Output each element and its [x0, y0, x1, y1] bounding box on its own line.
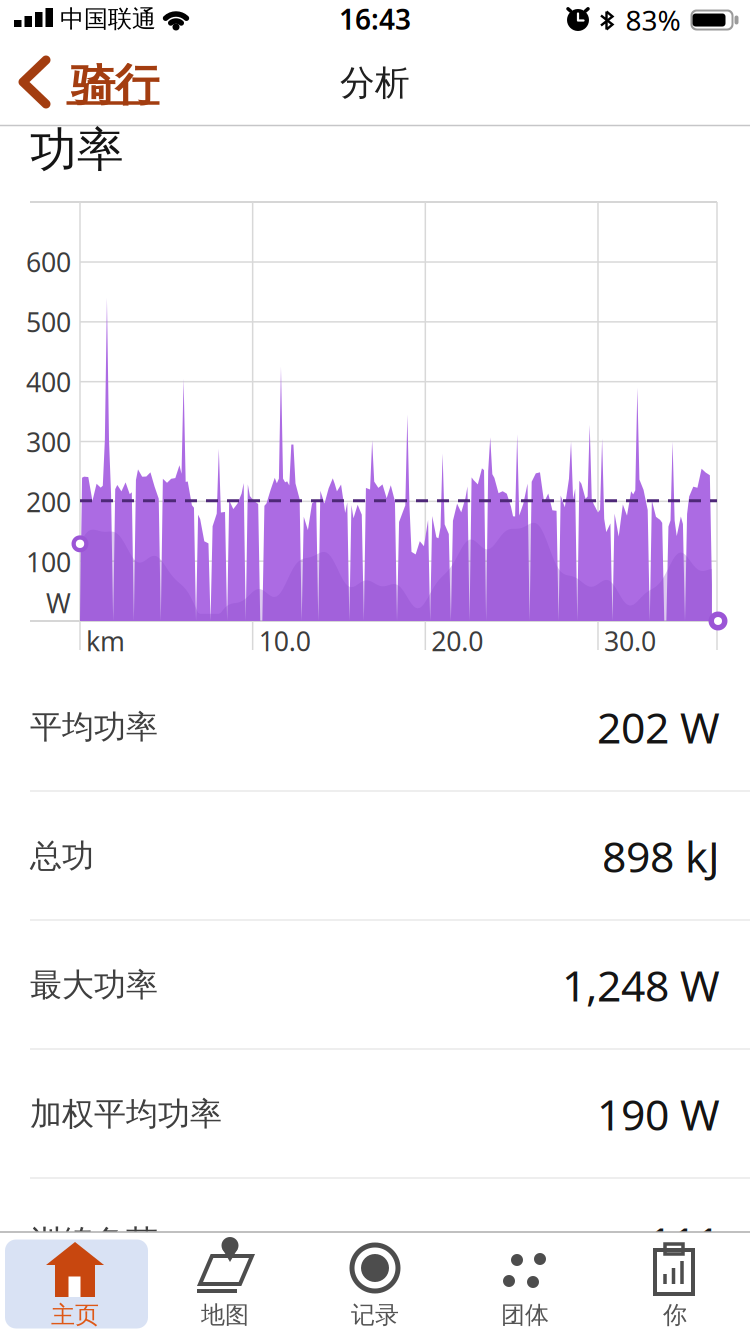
staticText: 10.0 — [259, 623, 311, 659]
staticText: 190 W — [597, 1086, 720, 1142]
staticText: km — [86, 623, 125, 659]
staticText: 分析 — [340, 62, 410, 104]
staticText: 898 kJ — [602, 828, 720, 884]
button[interactable]: 团体 — [450, 1232, 600, 1334]
staticText: 100 — [26, 544, 71, 580]
button[interactable]: 主页 — [0, 1232, 150, 1334]
staticText: 300 — [26, 424, 71, 460]
staticText: 主页 — [51, 1300, 99, 1330]
staticText: 600 — [26, 244, 71, 280]
button[interactable]: 记录 — [300, 1232, 450, 1334]
button[interactable]: 地图 — [150, 1232, 300, 1334]
staticText: 中国联通 — [60, 4, 156, 34]
staticText: 记录 — [351, 1300, 399, 1330]
staticText: 功率 — [30, 121, 124, 179]
staticText: 平均功率 — [30, 707, 158, 747]
staticText: 骑行 — [71, 58, 159, 112]
staticText: 你 — [663, 1300, 687, 1330]
staticText: 20.0 — [431, 623, 483, 659]
staticText: 团体 — [501, 1300, 549, 1330]
staticText: 111 — [648, 1214, 720, 1270]
staticText: 总功 — [30, 836, 94, 876]
staticText: W — [46, 585, 71, 621]
staticText: 加权平均功率 — [30, 1094, 222, 1134]
staticText: 500 — [26, 304, 71, 340]
staticText: 最大功率 — [30, 965, 158, 1005]
staticText: 30.0 — [604, 623, 656, 659]
staticText: 1,248 W — [562, 957, 720, 1013]
button[interactable]: 你 — [600, 1232, 750, 1334]
staticText: 83% — [625, 1, 680, 39]
button[interactable]: 返回骑行 — [14, 52, 168, 110]
staticText: 400 — [26, 364, 71, 400]
staticText: 16:43 — [339, 0, 411, 38]
staticText: 训练负荷 — [30, 1222, 158, 1262]
staticText: 地图 — [201, 1300, 249, 1330]
staticText: 200 — [26, 484, 71, 520]
staticText: 202 W — [597, 699, 720, 755]
